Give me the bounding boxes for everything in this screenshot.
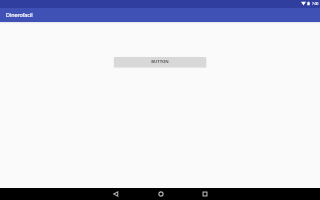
button[interactable]: Back xyxy=(104,188,127,200)
staticText: BUTTON xyxy=(151,59,169,65)
button[interactable]: Home xyxy=(149,188,172,200)
button[interactable]: BUTTON xyxy=(114,57,206,67)
staticText: Dinerofacil xyxy=(6,11,33,18)
button[interactable]: Recent apps xyxy=(193,188,216,200)
staticText: 7:00 xyxy=(312,2,319,6)
